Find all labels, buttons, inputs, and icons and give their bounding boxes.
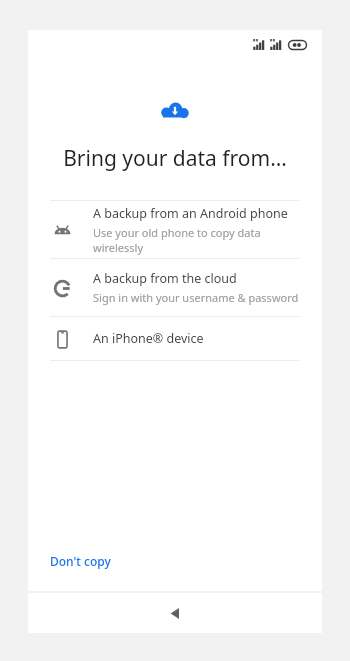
staticText: A backup from an Android phone bbox=[93, 205, 288, 222]
button[interactable]: Back bbox=[158, 596, 192, 630]
button[interactable]: An iPhone® device bbox=[28, 317, 322, 360]
staticText: Don't copy bbox=[50, 553, 111, 569]
button[interactable]: A backup from the cloud bbox=[28, 259, 322, 316]
staticText: Sign in with your username & password bbox=[93, 290, 299, 305]
button[interactable]: Don't copy bbox=[38, 545, 123, 577]
staticText: Bring your data from… bbox=[44, 144, 306, 173]
button[interactable]: A backup from an Android phone bbox=[28, 201, 322, 258]
staticText: A backup from the cloud bbox=[93, 270, 237, 287]
staticText: Use your old phone to copy data wireless… bbox=[93, 225, 302, 255]
staticText: An iPhone® device bbox=[93, 330, 204, 347]
